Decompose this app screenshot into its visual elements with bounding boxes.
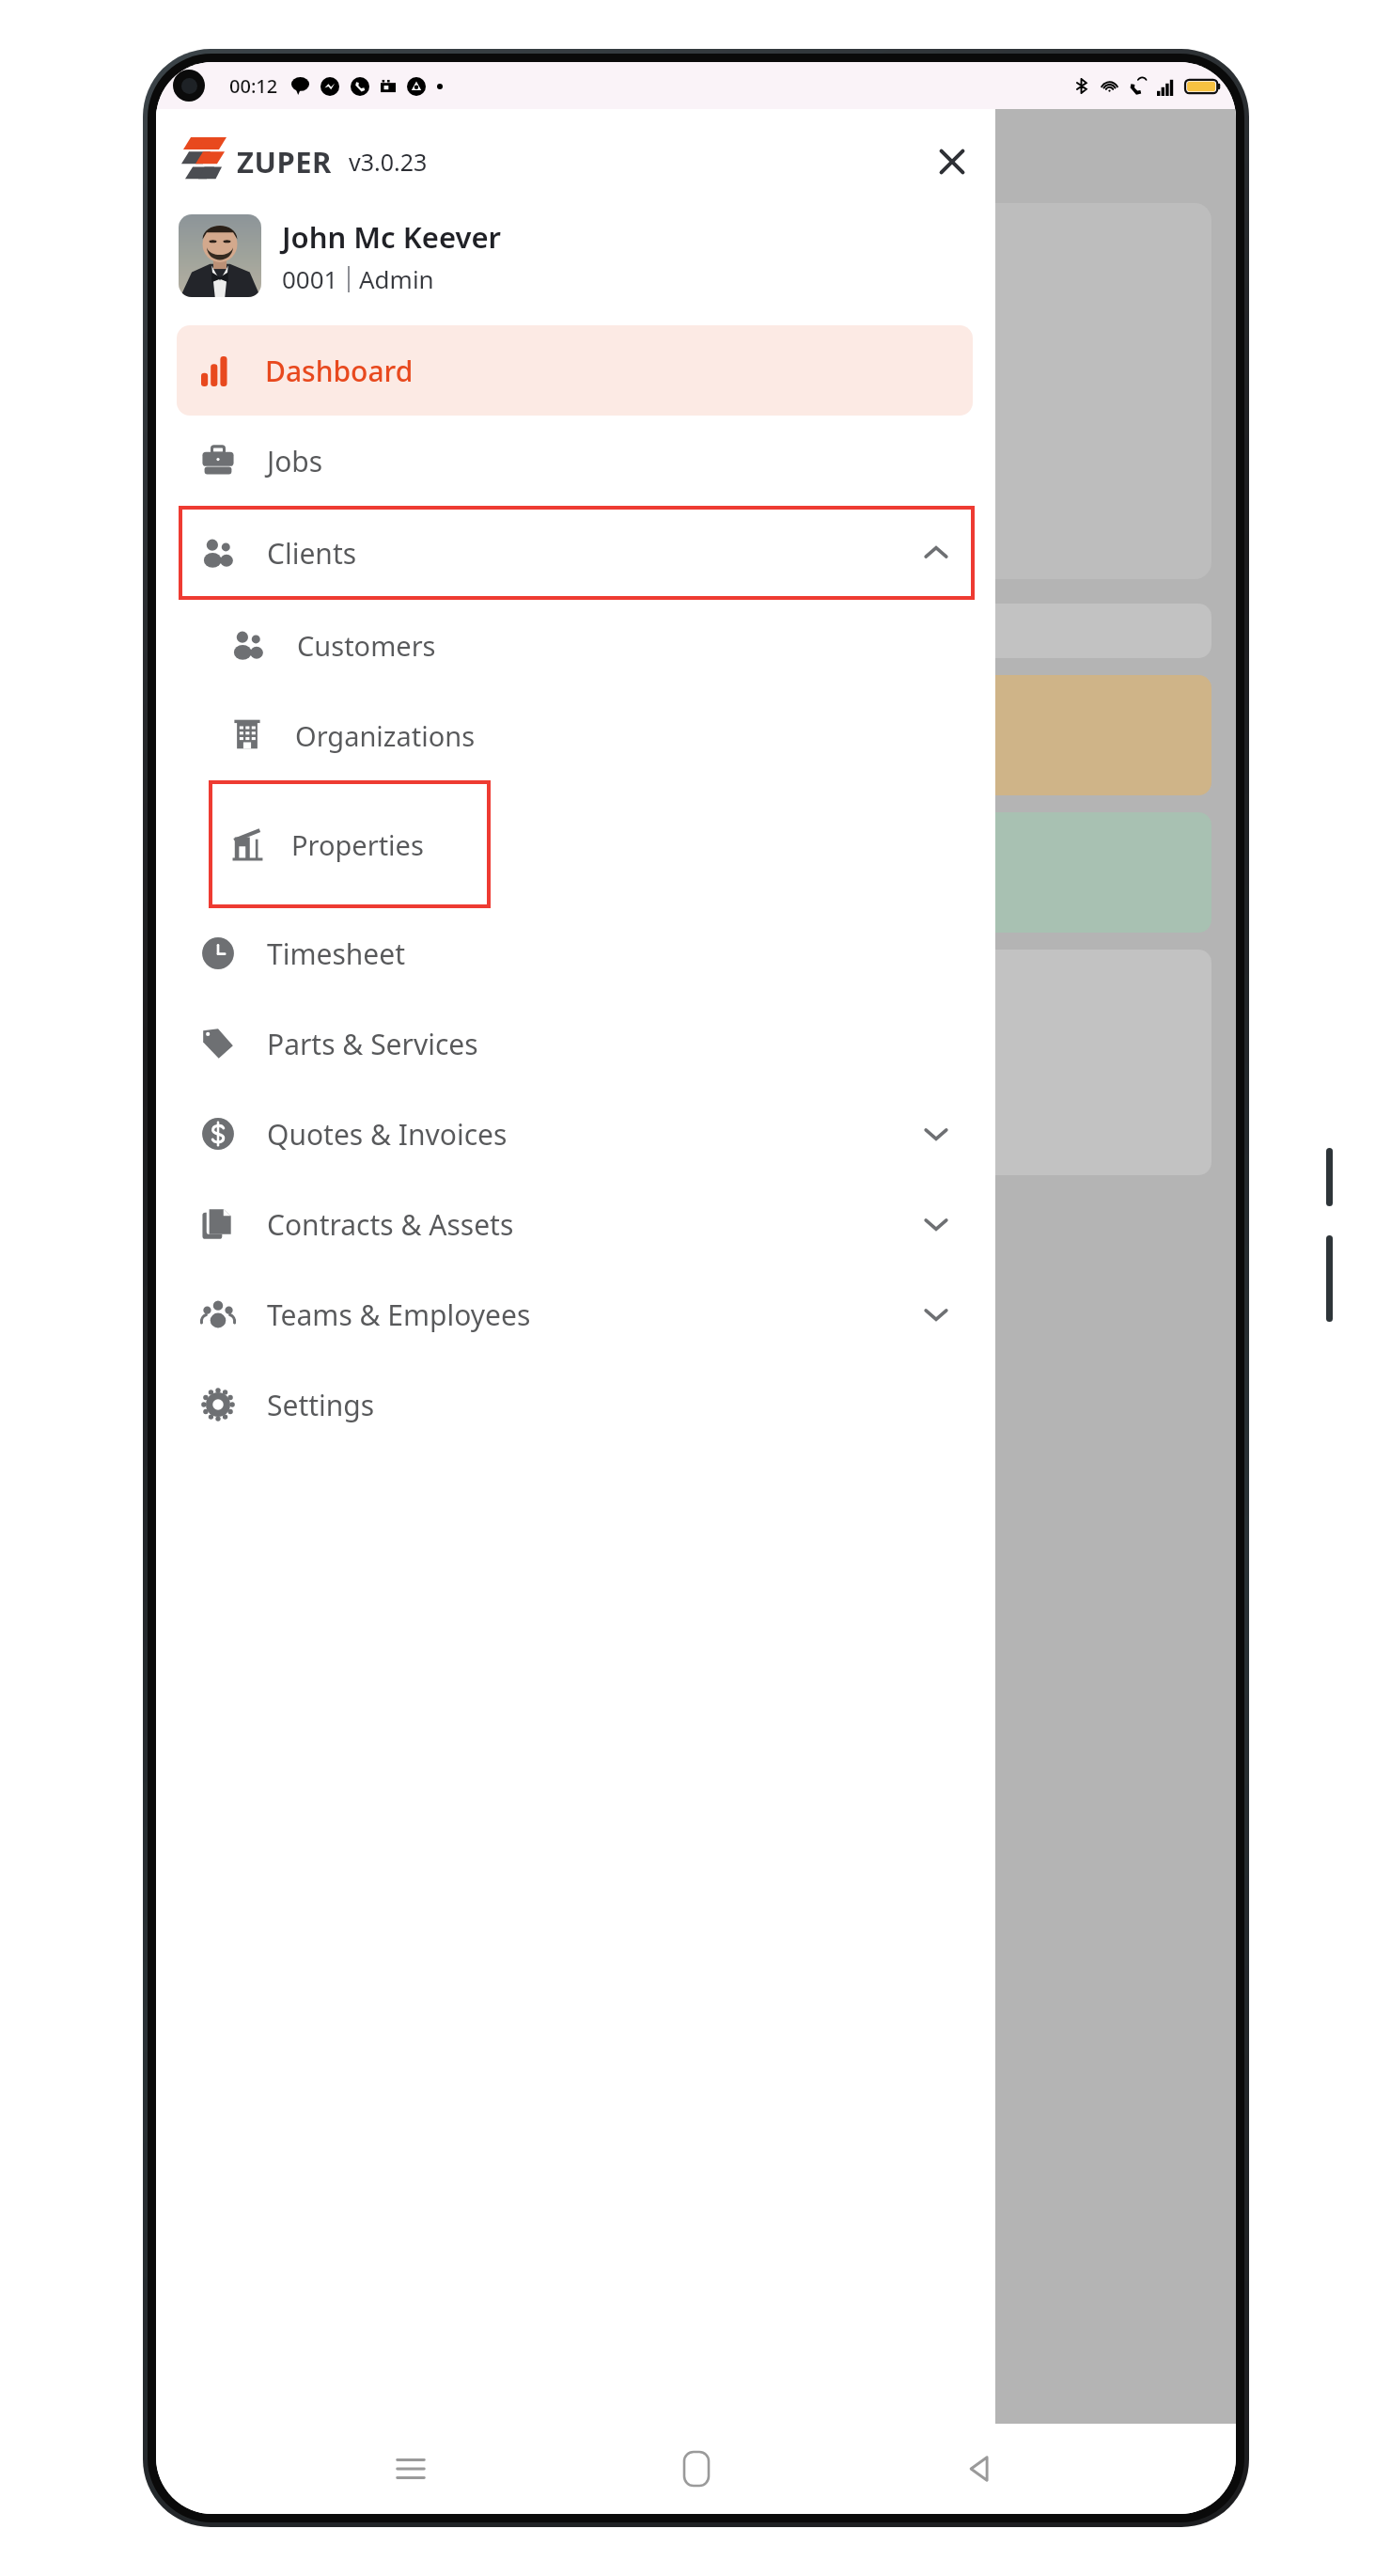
- button[interactable]: Close menu: [926, 135, 978, 188]
- button[interactable]: Jobs: [156, 416, 995, 506]
- staticText: Properties: [291, 826, 424, 863]
- staticText: 0001: [282, 262, 338, 295]
- staticText: v3.0.23: [349, 146, 428, 178]
- staticText: 00:12: [229, 73, 278, 99]
- staticText: Organizations: [295, 717, 476, 754]
- button[interactable]: Organizations: [156, 690, 995, 780]
- staticText: Clients: [267, 534, 357, 573]
- staticText: Timesheet: [267, 935, 405, 973]
- button[interactable]: Customers: [156, 600, 995, 690]
- button[interactable]: Back: [951, 2439, 1011, 2499]
- staticText: Admin: [359, 262, 434, 295]
- button[interactable]: John Mc Keever: [179, 207, 995, 305]
- staticText: Settings: [267, 1386, 375, 1424]
- button[interactable]: Settings: [156, 1359, 995, 1450]
- button[interactable]: Contracts & Assets: [156, 1179, 995, 1269]
- button[interactable]: Clients: [179, 506, 975, 600]
- staticText: Parts & Services: [267, 1025, 478, 1063]
- button[interactable]: Properties: [209, 780, 491, 908]
- button[interactable]: Timesheet: [156, 908, 995, 998]
- staticText: Dashboard: [265, 352, 414, 390]
- staticText: Quotes & Invoices: [267, 1115, 508, 1154]
- staticText: Contracts & Assets: [267, 1205, 514, 1244]
- button[interactable]: Home: [666, 2439, 727, 2499]
- button[interactable]: Dashboard: [177, 325, 973, 416]
- staticText: Customers: [297, 627, 436, 664]
- staticText: Jobs: [267, 442, 323, 480]
- button[interactable]: Teams & Employees: [156, 1269, 995, 1359]
- button[interactable]: Parts & Services: [156, 998, 995, 1089]
- staticText: John Mc Keever: [282, 217, 501, 257]
- button[interactable]: Quotes & Invoices: [156, 1089, 995, 1179]
- button[interactable]: Recent apps: [381, 2439, 441, 2499]
- staticText: ZUPER: [237, 142, 332, 181]
- staticText: Teams & Employees: [267, 1296, 531, 1334]
